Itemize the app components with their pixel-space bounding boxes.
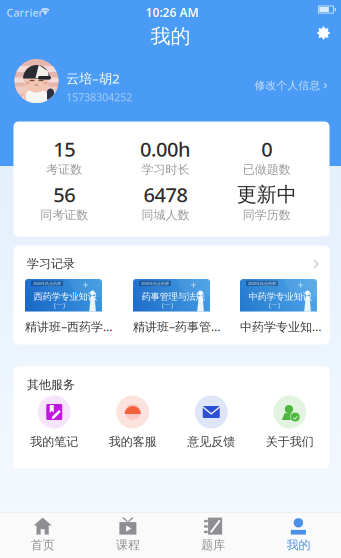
- staticText: 我的笔记: [30, 434, 78, 449]
- button[interactable]: 首页: [0, 512, 85, 558]
- staticText: (一): [162, 300, 173, 309]
- staticText: 课程: [116, 538, 140, 552]
- staticText: 6478: [143, 181, 187, 208]
- staticText: Carrier: [6, 5, 43, 20]
- staticText: 学习时长: [141, 162, 189, 177]
- staticText: 西药学专业知识: [33, 291, 96, 302]
- staticText: 同学历数: [243, 208, 291, 222]
- staticText: 学习记录: [27, 256, 75, 271]
- staticText: 精讲班–药事管…: [133, 318, 220, 334]
- staticText: 2020年执业药师: [141, 281, 169, 286]
- staticText: 已做题数: [243, 162, 291, 177]
- staticText: 我的客服: [109, 434, 157, 449]
- staticText: 修改个人信息: [254, 79, 320, 92]
- button[interactable]: 课程: [85, 512, 170, 558]
- staticText: 2020年执业药师: [248, 281, 276, 286]
- staticText: 题库: [201, 538, 225, 552]
- staticText: 同城人数: [141, 208, 189, 222]
- staticText: 云培–胡2: [66, 69, 120, 87]
- staticText: 关于我们: [266, 434, 314, 449]
- staticText: 我的: [150, 24, 190, 49]
- staticText: 其他服务: [27, 377, 75, 392]
- staticText: 10:26 AM: [145, 4, 198, 20]
- staticText: 药事管理与法规: [141, 291, 204, 302]
- button[interactable]: 关于我们: [250, 395, 329, 449]
- staticText: 56: [53, 181, 75, 208]
- staticText: 0: [261, 136, 272, 162]
- staticText: 意见反馈: [187, 434, 235, 449]
- button[interactable]: 2020年执业药师: [133, 279, 210, 333]
- button[interactable]: 意见反馈: [172, 395, 250, 449]
- staticText: (一): [54, 300, 65, 309]
- staticText: 考证数: [46, 162, 82, 177]
- staticText: 同考证数: [40, 208, 88, 222]
- staticText: (一): [269, 300, 280, 309]
- staticText: 我的: [286, 538, 310, 552]
- button[interactable]: 我的: [256, 512, 341, 558]
- staticText: 中药学专业知识: [248, 291, 311, 302]
- staticText: 2020年执业药师: [33, 281, 61, 286]
- staticText: 15: [53, 136, 75, 162]
- button[interactable]: 我的笔记: [15, 395, 93, 449]
- staticText: 精讲班–西药学…: [25, 318, 112, 334]
- button[interactable]: 修改个人信息: [250, 73, 331, 98]
- button[interactable]: 更多学习记录: [305, 251, 326, 276]
- button[interactable]: 2020年执业药师: [25, 279, 102, 333]
- button[interactable]: 我的客服: [93, 395, 172, 449]
- button[interactable]: 设置: [310, 20, 336, 46]
- staticText: 15738304252: [66, 90, 132, 104]
- staticText: 首页: [31, 538, 55, 552]
- staticText: 0.00h: [140, 136, 191, 162]
- button[interactable]: 2020年执业药师: [240, 279, 317, 333]
- button[interactable]: 题库: [170, 512, 256, 558]
- staticText: 中药学专业知…: [240, 318, 321, 334]
- staticText: 更新中: [237, 182, 297, 207]
